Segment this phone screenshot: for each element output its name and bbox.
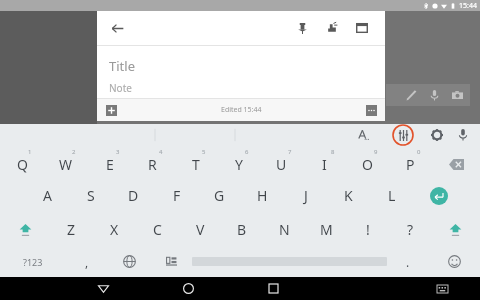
button[interactable]: Back [80,277,127,300]
button[interactable]: Recent apps [250,277,297,300]
button[interactable]: ? [389,212,431,246]
button[interactable]: Back [103,14,131,42]
button[interactable]: Keyboard themes [388,124,418,146]
button[interactable]: ! [347,212,389,246]
staticText: R [148,155,157,174]
staticText: X [110,220,119,239]
staticText: 3 [116,148,120,156]
staticText: ?123 [23,256,43,268]
staticText: I [322,155,327,174]
button[interactable]: Archive [349,15,375,41]
button[interactable]: A [25,179,69,212]
button[interactable]: Shift [0,212,50,246]
staticText: Y [235,155,243,174]
button[interactable]: 2 [44,146,88,179]
staticText: 4 [159,148,163,156]
button[interactable]: Settings [426,124,448,146]
button[interactable]: Switch keyboard [419,277,466,300]
staticText: N [279,220,290,239]
button[interactable]: Emoji [429,246,480,277]
button[interactable]: 1 [0,146,44,179]
staticText: F [173,186,181,205]
button[interactable]: Add [103,102,119,118]
staticText: 1 [28,148,32,156]
staticText: K [344,186,353,205]
staticText: 7 [288,148,292,156]
button[interactable]: H [241,179,284,212]
button[interactable]: V [179,212,221,246]
staticText: C [153,220,162,239]
button[interactable]: 6 [217,146,260,179]
button[interactable]: Voice note [424,85,444,105]
button[interactable]: Pin note [289,15,315,41]
staticText: 0 [417,148,421,156]
button[interactable]: 8 [303,146,346,179]
button[interactable]: F [155,179,198,212]
button[interactable]: D [112,179,155,212]
button[interactable]: Voice input [452,124,474,146]
staticText: . [406,254,410,270]
button[interactable]: S [69,179,112,212]
button[interactable]: More options [363,102,379,118]
staticText: D [128,186,139,205]
button[interactable]: L [370,179,413,212]
staticText: B [237,220,247,239]
button[interactable]: 7 [260,146,303,179]
staticText: A [43,186,52,205]
staticText: 9 [374,148,378,156]
staticText: G [214,186,225,205]
button[interactable]: Shift [431,212,480,246]
button[interactable]: 9 [346,146,389,179]
staticText: V [196,220,205,239]
button[interactable]: Home [165,277,212,300]
staticText: S [87,186,95,205]
button[interactable]: Change language [108,246,150,277]
button[interactable]: Z [50,212,93,246]
button[interactable]: K [327,179,370,212]
button[interactable]: Remind me [319,15,345,41]
button[interactable]: G [198,179,241,212]
button[interactable]: J [284,179,327,212]
staticText: E [106,155,114,174]
staticText: Edited 15:44 [221,105,262,115]
button[interactable]: Text correction [351,124,375,146]
button[interactable]: 5 [174,146,217,179]
staticText: 15:44 [459,1,477,11]
button[interactable]: , [65,246,108,277]
staticText: 5 [202,148,206,156]
staticText: T [192,155,200,174]
staticText: Z [67,220,76,239]
staticText: Q [17,155,28,174]
button[interactable]: ?123 [0,246,65,277]
button[interactable]: Space [192,246,387,277]
staticText: W [59,155,73,174]
button[interactable]: N [263,212,305,246]
staticText: ? [407,220,414,239]
staticText: O [362,155,373,174]
staticText: 2 [72,148,76,156]
staticText: L [388,186,396,205]
button[interactable]: X [93,212,136,246]
staticText: 8 [331,148,335,156]
staticText: M [320,220,333,239]
button[interactable]: 3 [88,146,131,179]
button[interactable]: M [305,212,347,246]
staticText: J [304,186,308,205]
staticText: P [406,155,415,174]
button[interactable]: C [136,212,179,246]
button[interactable]: B [221,212,263,246]
button[interactable]: 0 [389,146,432,179]
staticText: Note [109,81,132,95]
button[interactable]: Draw [401,85,421,105]
button[interactable]: Keyboard layout [150,246,192,277]
staticText: ! [366,220,370,239]
button[interactable]: Camera [447,85,467,105]
staticText: 6 [245,148,249,156]
button[interactable]: . [387,246,429,277]
button[interactable]: Backspace [432,146,480,179]
staticText: U [276,155,287,174]
staticText: H [257,186,268,205]
button[interactable]: Enter [413,179,465,212]
staticText: , [85,254,89,270]
button[interactable]: 4 [131,146,174,179]
